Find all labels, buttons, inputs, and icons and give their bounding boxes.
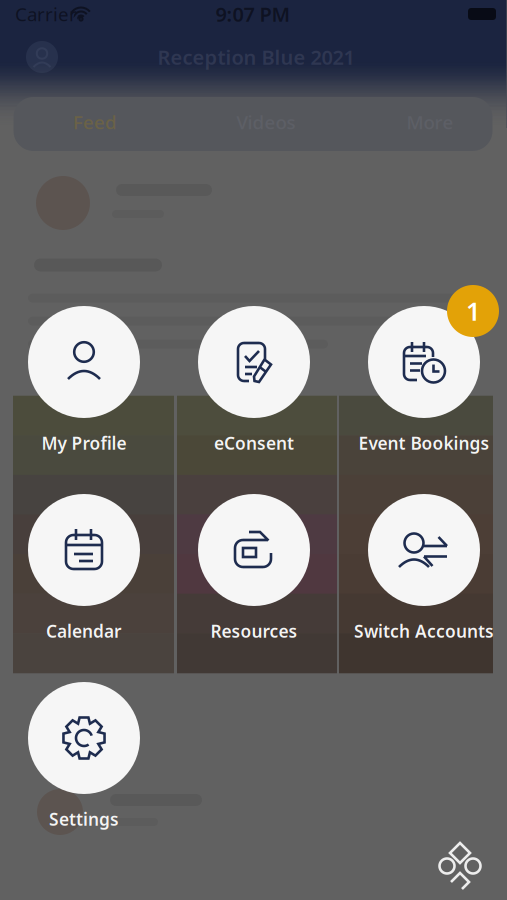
staticText: 9:07 PM bbox=[215, 1, 290, 27]
staticText: eConsent bbox=[214, 431, 294, 454]
button[interactable] bbox=[28, 306, 140, 418]
staticText: Feed bbox=[73, 110, 117, 134]
staticText: Settings bbox=[49, 807, 119, 830]
button[interactable] bbox=[368, 494, 480, 606]
button[interactable] bbox=[368, 306, 480, 418]
button[interactable] bbox=[198, 494, 310, 606]
button[interactable] bbox=[198, 306, 310, 418]
staticText: Switch Accounts bbox=[354, 619, 494, 642]
staticText: More bbox=[406, 110, 453, 134]
button[interactable] bbox=[28, 494, 140, 606]
button[interactable]: Close menu bbox=[427, 830, 495, 900]
staticText: Event Bookings bbox=[358, 431, 489, 454]
staticText: Calendar bbox=[46, 619, 122, 642]
staticText: Carrier bbox=[15, 2, 77, 26]
staticText: My Profile bbox=[41, 431, 126, 454]
button[interactable] bbox=[28, 682, 140, 794]
staticText: 1 bbox=[466, 294, 480, 328]
button[interactable]: Account bbox=[24, 39, 60, 75]
staticText: Reception Blue 2021 bbox=[157, 44, 354, 70]
button[interactable]: Feed bbox=[47, 98, 143, 146]
staticText: Videos bbox=[236, 110, 295, 134]
staticText: Resources bbox=[210, 619, 297, 642]
